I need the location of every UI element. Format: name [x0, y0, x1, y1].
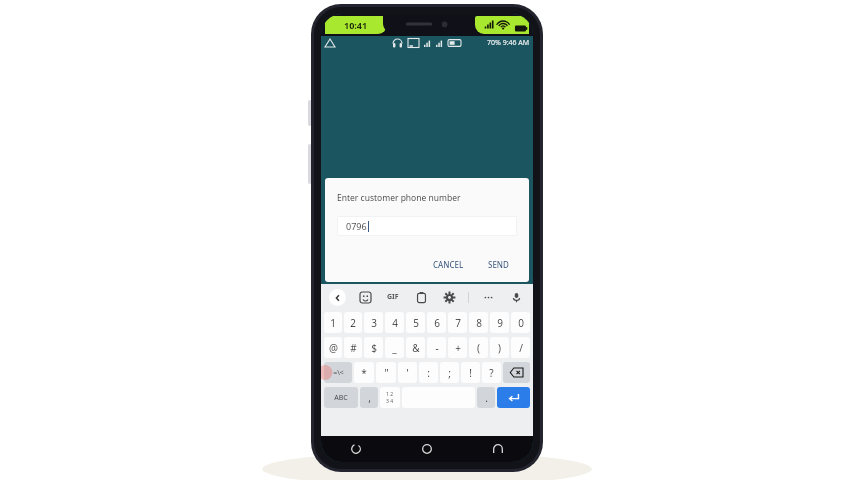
- button[interactable]: /: [511, 337, 530, 358]
- button[interactable]: -: [427, 337, 446, 358]
- button[interactable]: ABC: [324, 387, 358, 408]
- staticText: 1 2: [386, 391, 394, 398]
- button[interactable]: Settings: [440, 288, 458, 306]
- staticText: 8: [476, 316, 482, 330]
- button[interactable]: (: [469, 337, 488, 358]
- button[interactable]: 4: [385, 312, 404, 333]
- button[interactable]: Backspace: [503, 362, 530, 383]
- button[interactable]: 0796: [337, 216, 517, 236]
- button[interactable]: =\<: [324, 362, 352, 383]
- button[interactable]: More options: [479, 288, 497, 306]
- button[interactable]: Back: [462, 436, 533, 462]
- staticText: 1: [330, 316, 336, 330]
- staticText: ?: [489, 366, 494, 380]
- button[interactable]: 1 2: [380, 387, 400, 408]
- button[interactable]: 7: [448, 312, 467, 333]
- button[interactable]: Home: [391, 436, 462, 462]
- staticText: -: [435, 341, 439, 355]
- button[interactable]: ;: [440, 362, 459, 383]
- button[interactable]: ): [490, 337, 509, 358]
- button[interactable]: ": [376, 362, 396, 383]
- staticText: 0: [518, 316, 524, 330]
- button[interactable]: .: [477, 387, 495, 408]
- button[interactable]: &: [406, 337, 425, 358]
- staticText: _: [392, 341, 397, 355]
- staticText: $: [371, 341, 377, 355]
- button[interactable]: $: [364, 337, 383, 358]
- button[interactable]: 1: [324, 312, 342, 333]
- button[interactable]: @: [324, 337, 342, 358]
- button[interactable]: 8: [469, 312, 488, 333]
- staticText: 5: [413, 316, 419, 330]
- staticText: =\<: [333, 368, 344, 378]
- staticText: .: [485, 391, 488, 405]
- button[interactable]: Clipboard: [412, 288, 430, 306]
- button[interactable]: +: [448, 337, 467, 358]
- staticText: #: [350, 341, 357, 355]
- staticText: 10:41: [344, 19, 368, 31]
- staticText: CANCEL: [433, 259, 464, 270]
- button[interactable]: ': [398, 362, 417, 383]
- staticText: GIF: [387, 292, 399, 302]
- staticText: SEND: [488, 259, 509, 270]
- staticText: ;: [448, 366, 451, 380]
- button[interactable]: 5: [406, 312, 425, 333]
- staticText: 3 4: [386, 398, 394, 405]
- button[interactable]: Enter: [497, 387, 530, 408]
- staticText: ABC: [334, 393, 348, 403]
- staticText: +: [455, 341, 461, 355]
- staticText: @: [329, 341, 338, 355]
- staticText: (: [477, 341, 480, 355]
- button[interactable]: Recent apps: [321, 436, 391, 462]
- staticText: ,: [368, 391, 371, 405]
- button[interactable]: CANCEL: [427, 256, 470, 273]
- staticText: 3: [371, 316, 377, 330]
- button[interactable]: GIF: [384, 288, 402, 306]
- button[interactable]: _: [385, 337, 404, 358]
- button[interactable]: !: [461, 362, 480, 383]
- staticText: 0796: [346, 220, 367, 232]
- staticText: 2: [350, 316, 356, 330]
- staticText: Enter customer phone number: [337, 192, 461, 204]
- button[interactable]: ?: [482, 362, 501, 383]
- staticText: /: [519, 341, 523, 355]
- button[interactable]: 6: [427, 312, 446, 333]
- button[interactable]: Voice input: [507, 288, 525, 306]
- button[interactable]: ,: [360, 387, 378, 408]
- staticText: 4: [392, 316, 398, 330]
- button[interactable]: 0: [511, 312, 530, 333]
- button[interactable]: Stickers: [356, 288, 374, 306]
- button[interactable]: *: [354, 362, 374, 383]
- staticText: !: [469, 366, 472, 380]
- button[interactable]: #: [344, 337, 362, 358]
- staticText: &: [412, 341, 420, 355]
- staticText: 70% 9:46 AM: [487, 38, 530, 48]
- staticText: 7: [455, 316, 461, 330]
- staticText: ): [498, 341, 501, 355]
- button[interactable]: 3: [364, 312, 383, 333]
- staticText: ": [384, 366, 389, 380]
- staticText: *: [361, 366, 367, 380]
- button[interactable]: :: [419, 362, 438, 383]
- staticText: :: [427, 366, 430, 380]
- button[interactable]: 2: [344, 312, 362, 333]
- staticText: 6: [434, 316, 440, 330]
- button[interactable]: SEND: [482, 256, 515, 273]
- staticText: 9: [497, 316, 503, 330]
- staticText: ': [406, 366, 409, 380]
- button[interactable]: 9: [490, 312, 509, 333]
- button[interactable]: Collapse toolbar: [329, 289, 346, 306]
